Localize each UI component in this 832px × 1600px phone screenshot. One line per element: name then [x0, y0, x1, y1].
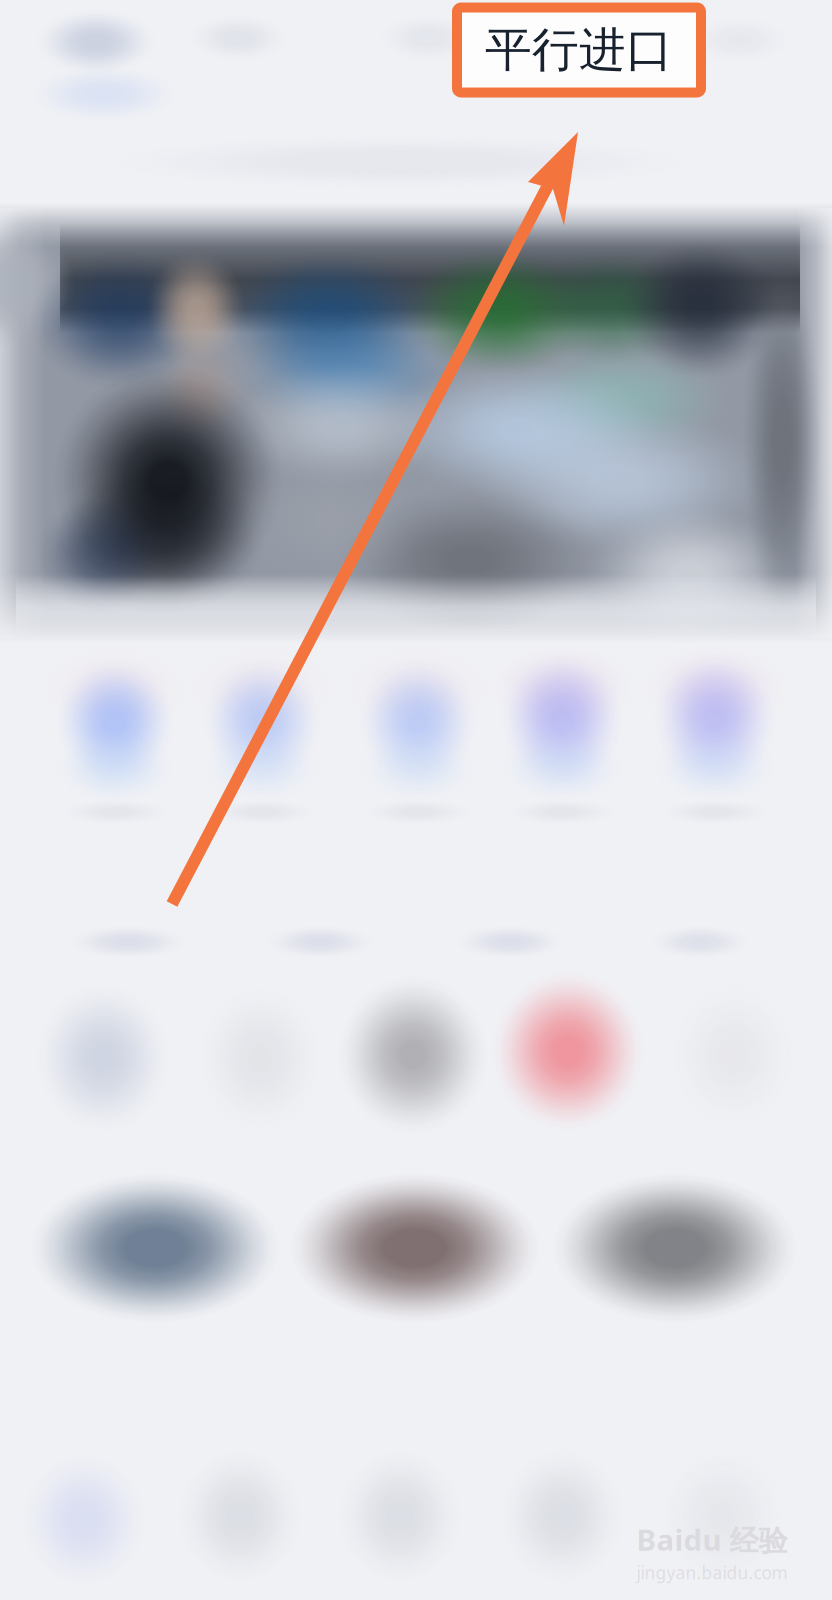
staticText: Baidu 经验: [636, 1520, 787, 1559]
staticText: 平行进口: [485, 21, 673, 79]
staticText: jingyan.baidu.com: [636, 1561, 787, 1584]
button[interactable]: 平行进口: [457, 7, 701, 92]
